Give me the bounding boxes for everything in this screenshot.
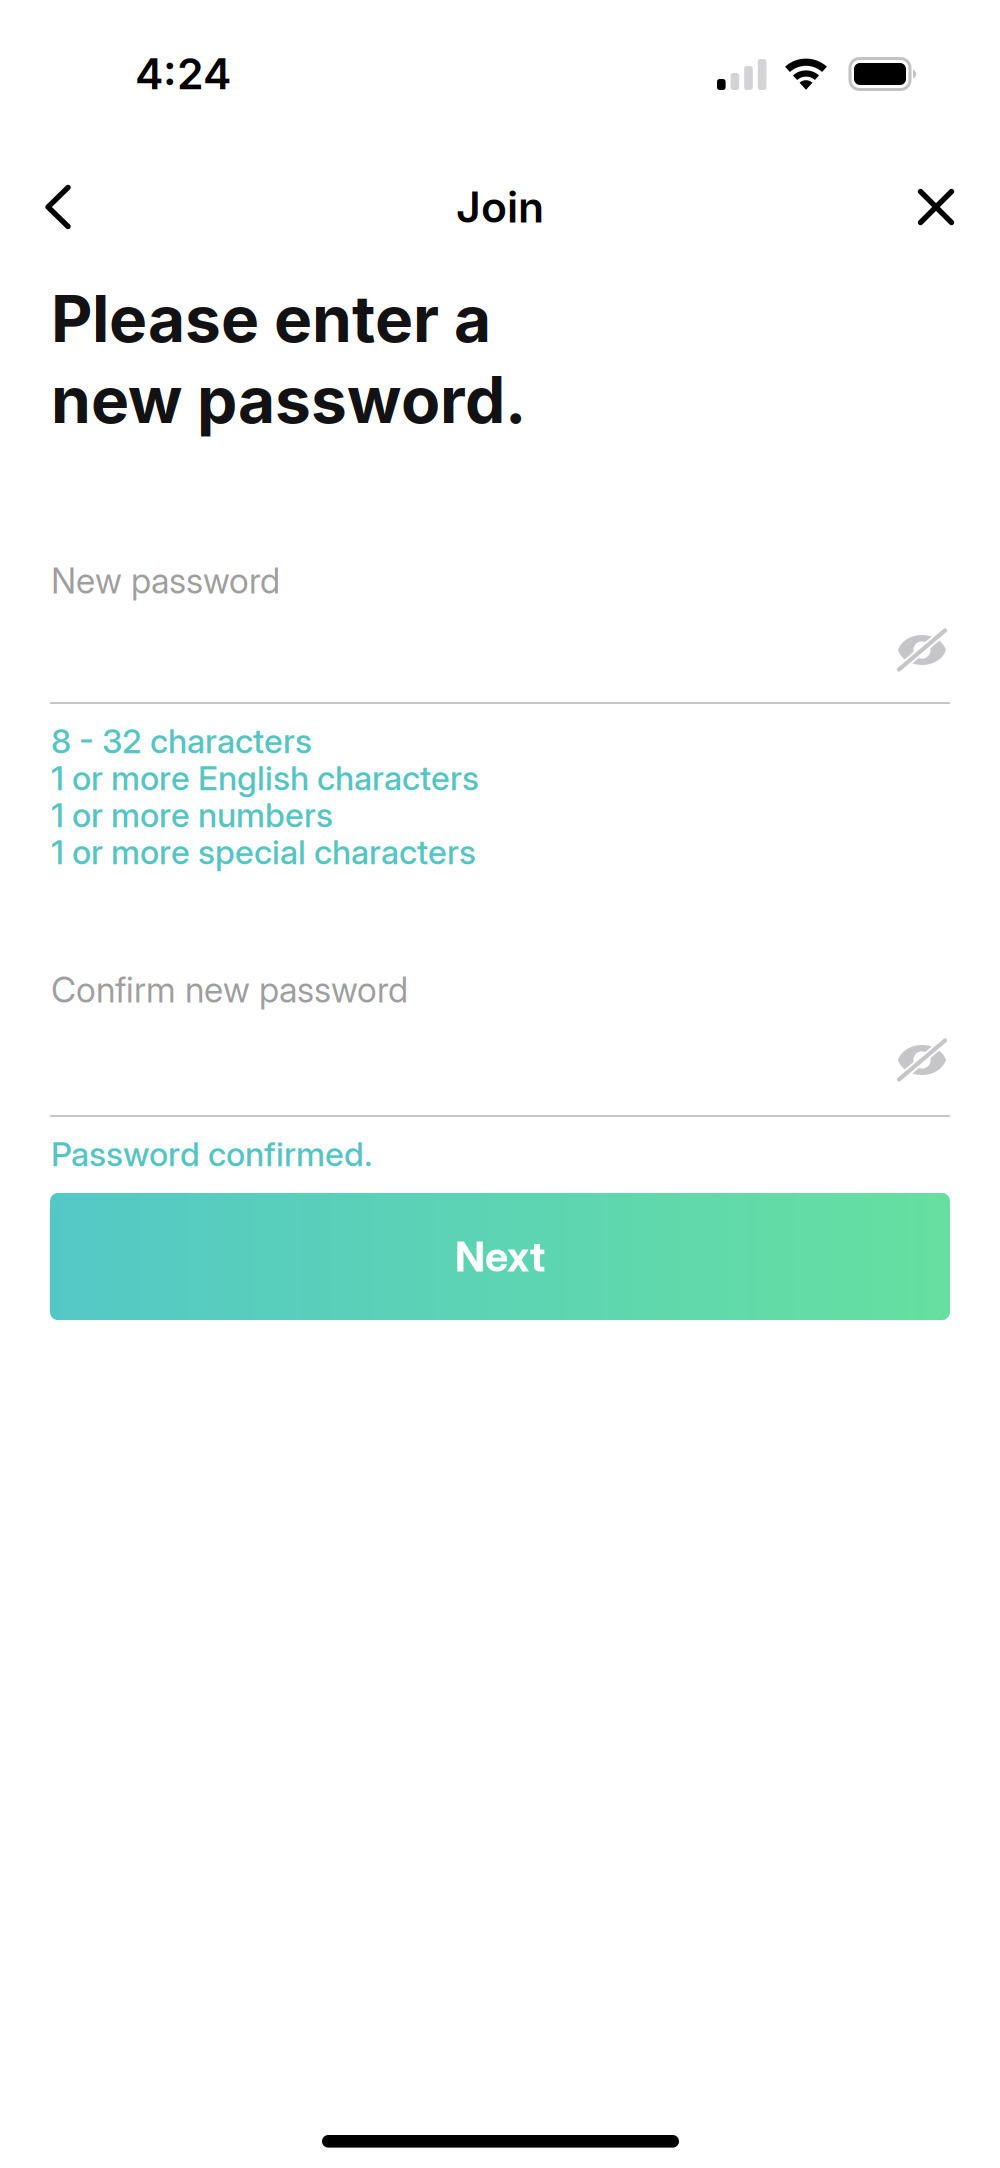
staticText: 1 or more numbers <box>51 795 333 835</box>
button[interactable]: Show password <box>881 610 965 690</box>
staticText: New password <box>51 560 280 602</box>
button[interactable]: Back <box>14 163 102 251</box>
staticText: Please enter a <box>51 280 491 357</box>
staticText: 1 or more English characters <box>51 758 479 798</box>
staticText: 1 or more special characters <box>51 832 476 872</box>
staticText: new password. <box>51 361 526 438</box>
button[interactable]: Close <box>892 163 980 251</box>
staticText: 4:24 <box>135 48 231 100</box>
staticText: Next <box>455 1231 545 1281</box>
button[interactable]: Next <box>50 1193 950 1320</box>
button[interactable]: Join <box>400 163 600 251</box>
staticText: 8 - 32 characters <box>51 721 312 761</box>
staticText: Join <box>456 181 544 233</box>
staticText: Confirm new password <box>51 969 408 1011</box>
button[interactable]: Show confirm password <box>881 1020 965 1100</box>
staticText: Password confirmed. <box>51 1134 373 1174</box>
